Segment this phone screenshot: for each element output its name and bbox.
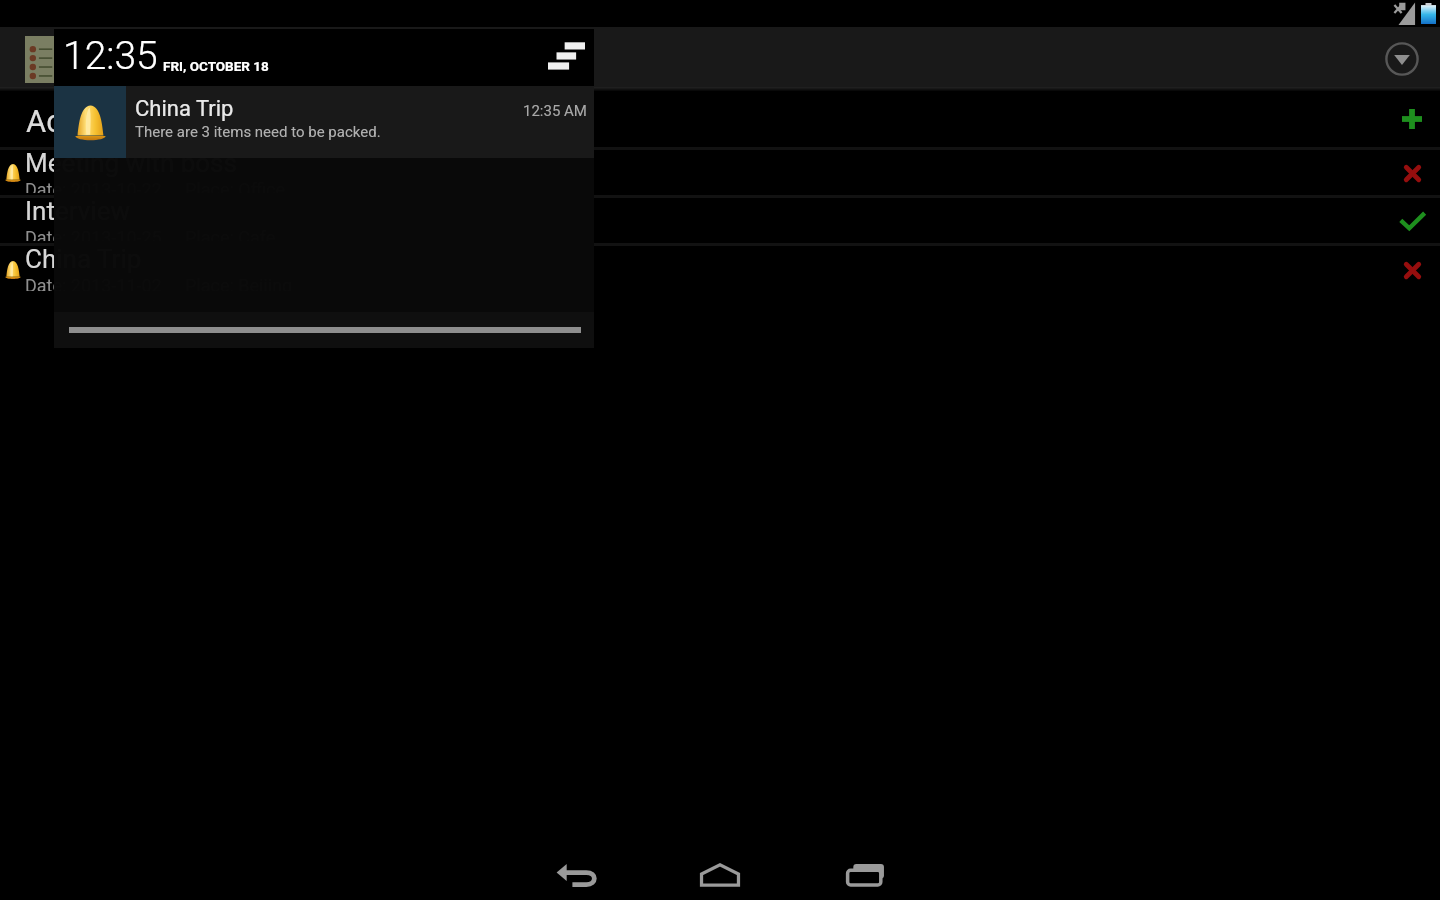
staticText: Meeting with boss (25, 148, 237, 178)
button[interactable]: Activities (0, 91, 1440, 147)
staticText: Date: 2013-10-22 (25, 179, 185, 193)
staticText: Date: 2013-11-02 (25, 275, 185, 291)
staticText: China Trip (25, 244, 142, 274)
button[interactable]: Meeting with boss (0, 150, 1440, 195)
button[interactable]: Back (504, 848, 648, 900)
button[interactable]: More options (1378, 35, 1426, 83)
staticText: There are 3 items need to be packed. (135, 123, 381, 141)
button[interactable]: China Trip (0, 246, 1440, 293)
button[interactable]: Recent apps (792, 848, 936, 900)
staticText: Activities (26, 103, 153, 139)
staticText: 12:35 (63, 33, 158, 79)
button[interactable]: Clear all notifications (543, 34, 589, 80)
button[interactable]: Interview (0, 198, 1440, 243)
button[interactable]: Home (648, 848, 792, 900)
staticText: Interview (25, 196, 131, 226)
staticText: Date: 2013-10-25 (25, 227, 185, 241)
staticText: FRI, OCTOBER 18 (163, 58, 269, 74)
button[interactable]: China Trip (54, 86, 594, 158)
staticText: China Trip (135, 96, 234, 122)
staticText: 12:35 AM (523, 102, 587, 120)
